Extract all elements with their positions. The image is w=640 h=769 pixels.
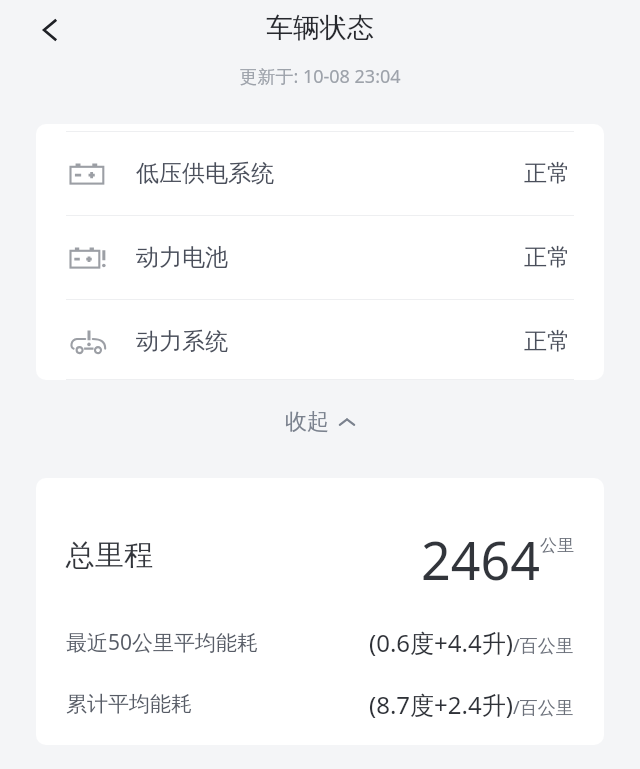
button[interactable]: Back [22, 2, 78, 58]
staticText: (8.7度+2.4升) [369, 688, 513, 721]
button[interactable]: 累计平均能耗 [36, 682, 604, 726]
staticText: (0.6度+4.4升) [369, 626, 513, 659]
staticText: 最近50公里平均能耗 [66, 628, 259, 657]
staticText: 动力系统 [136, 327, 228, 356]
staticText: 正常 [524, 243, 570, 272]
staticText: 车辆状态 [0, 11, 640, 45]
staticText: /百公里 [513, 633, 574, 658]
staticText: 更新于: 10-08 23:04 [0, 64, 640, 89]
staticText: 总里程 [66, 537, 153, 574]
staticText: 低压供电系统 [136, 159, 274, 188]
staticText: 累计平均能耗 [66, 691, 192, 717]
staticText: 收起 [285, 408, 329, 436]
staticText: 2464 [421, 524, 540, 586]
staticText: 公里 [540, 535, 574, 556]
staticText: 正常 [524, 159, 570, 188]
button[interactable]: 动力系统 [36, 300, 604, 380]
button[interactable]: 动力电池 [36, 216, 604, 299]
staticText: 动力电池 [136, 243, 228, 272]
staticText: 正常 [524, 327, 570, 356]
button[interactable]: 低压供电系统 [36, 132, 604, 215]
button[interactable]: 收起 [263, 400, 377, 444]
button[interactable]: 最近50公里平均能耗 [36, 620, 604, 664]
staticText: /百公里 [513, 695, 574, 720]
